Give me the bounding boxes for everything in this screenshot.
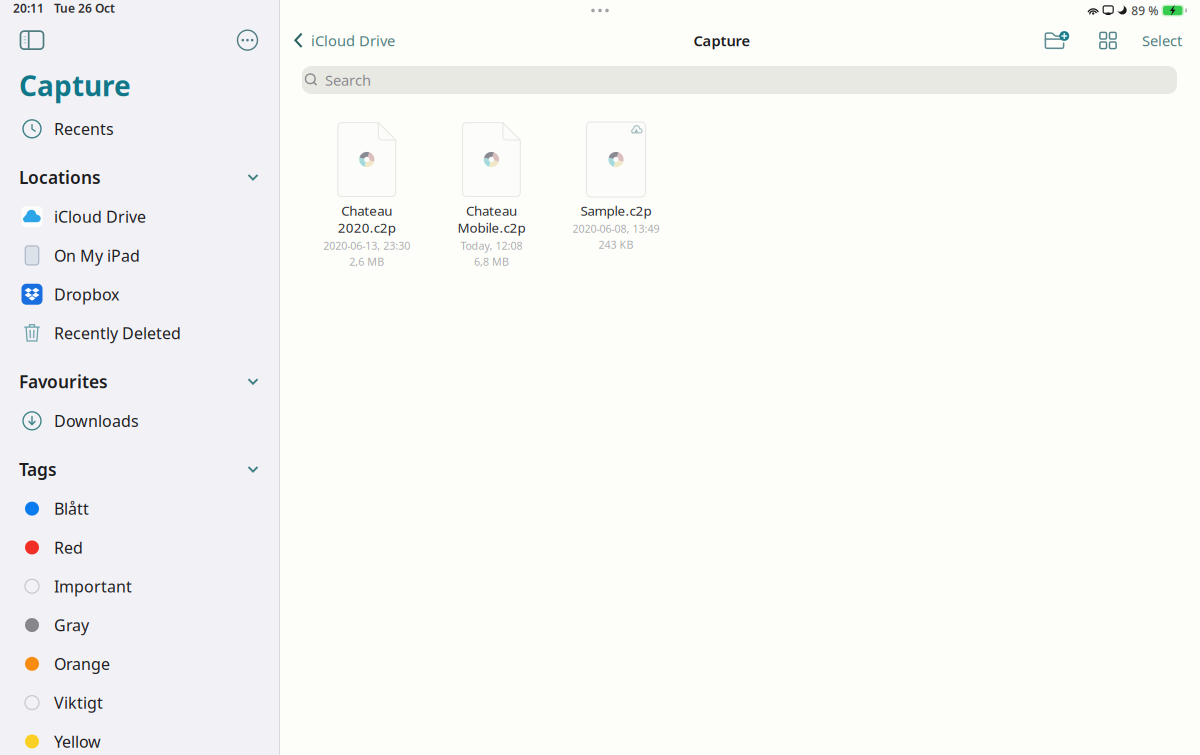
staticText: Mobile.c2p	[457, 219, 525, 236]
button[interactable]: Select	[1138, 25, 1186, 55]
staticText: Yellow	[54, 731, 101, 752]
button[interactable]: Viktigt	[0, 683, 279, 722]
button[interactable]: Red	[0, 528, 279, 567]
staticText: Sample.c2p	[580, 202, 651, 219]
staticText: Blått	[54, 498, 89, 519]
staticText: Capture	[19, 67, 131, 104]
button[interactable]: Collapse Locations	[241, 164, 265, 190]
staticText: 2020-06-08, 13:49	[572, 221, 659, 236]
staticText: Dropbox	[54, 284, 119, 305]
staticText: Capture	[693, 31, 750, 50]
button[interactable]: iCloud Drive	[286, 22, 403, 58]
staticText: Select	[1142, 31, 1182, 50]
staticText: Gray	[54, 614, 89, 636]
staticText: Today, 12:08	[460, 238, 522, 253]
staticText: Orange	[54, 653, 110, 674]
button[interactable]: iCloud Drive	[0, 197, 279, 236]
button[interactable]: Collapse Tags	[241, 456, 265, 482]
staticText: Important	[54, 576, 132, 597]
button[interactable]: Orange	[0, 644, 279, 683]
staticText: Search	[325, 70, 371, 90]
staticText: iCloud Drive	[311, 31, 395, 50]
staticText: Downloads	[54, 410, 139, 431]
button[interactable]: Search	[302, 66, 1177, 94]
button[interactable]: Grid View	[1093, 25, 1123, 55]
staticText: iCloud Drive	[54, 206, 146, 227]
staticText: Viktigt	[54, 692, 103, 713]
button[interactable]: Downloads	[0, 401, 279, 440]
button[interactable]: Recents	[0, 109, 279, 148]
button[interactable]: More	[233, 27, 261, 53]
staticText: 89 %	[1131, 2, 1158, 18]
button[interactable]: Important	[0, 567, 279, 606]
button[interactable]: Dropbox	[0, 275, 279, 314]
button[interactable]: Collapse Favourites	[241, 368, 265, 394]
staticText: Chateau	[466, 202, 517, 219]
button[interactable]: On My iPad	[0, 236, 279, 275]
staticText: Locations	[19, 166, 101, 189]
staticText: 20:11	[13, 0, 44, 16]
staticText: Chateau	[341, 202, 392, 219]
staticText: Recently Deleted	[54, 322, 181, 344]
staticText: 6,8 MB	[474, 254, 509, 269]
staticText: 2,6 MB	[349, 254, 384, 269]
staticText: Tags	[19, 458, 57, 481]
button[interactable]: New Folder	[1041, 25, 1071, 55]
staticText: Recents	[54, 118, 114, 139]
button[interactable]: Chateau	[429, 122, 554, 302]
button[interactable]: Sample.c2p	[554, 122, 678, 302]
staticText: 243 KB	[598, 237, 633, 252]
button[interactable]: Gray	[0, 606, 279, 644]
staticText: Favourites	[19, 370, 108, 393]
staticText: Red	[54, 537, 83, 558]
staticText: 2020-06-13, 23:30	[323, 238, 410, 253]
button[interactable]: Yellow	[0, 722, 279, 755]
button[interactable]: Recently Deleted	[0, 314, 279, 352]
staticText: Tue 26 Oct	[54, 0, 115, 16]
button[interactable]: Hide Sidebar	[15, 27, 49, 53]
staticText: On My iPad	[54, 245, 140, 266]
staticText: 2020.c2p	[338, 219, 396, 236]
button[interactable]: Blått	[0, 489, 279, 528]
button[interactable]: Chateau	[304, 122, 429, 302]
